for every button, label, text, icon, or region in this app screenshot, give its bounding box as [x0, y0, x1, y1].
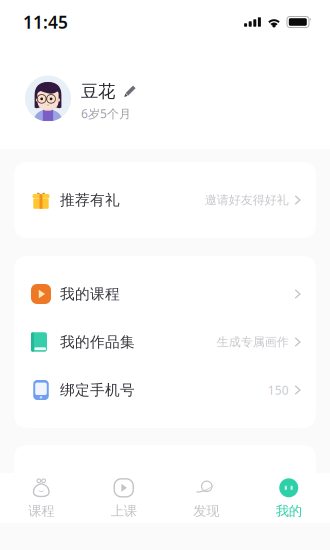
staticText: 生成专属画作	[217, 335, 289, 349]
staticText: 上课	[111, 503, 137, 519]
button[interactable]: 我的	[247, 473, 330, 523]
button[interactable]: 推荐有礼	[14, 176, 316, 224]
staticText: 豆花	[81, 81, 115, 102]
staticText: 我的课程	[60, 285, 120, 303]
staticText: 推荐有礼	[60, 191, 120, 209]
staticText: 我的订单	[60, 474, 120, 492]
button[interactable]: 绑定手机号	[14, 366, 316, 414]
button[interactable]: 上课	[82, 473, 165, 523]
staticText: 我的	[276, 503, 302, 519]
button[interactable]: 发现	[165, 473, 247, 523]
button[interactable]: 豆花	[0, 44, 330, 132]
staticText: 发现	[193, 503, 219, 519]
button[interactable]: 我的作品集	[14, 318, 316, 366]
button[interactable]: 我的订单	[14, 459, 316, 507]
button[interactable]: 课程	[0, 473, 82, 523]
staticText: 11:45	[23, 10, 68, 33]
staticText: 邀请好友得好礼	[205, 193, 289, 207]
staticText: 150	[268, 382, 289, 398]
staticText: 绑定手机号	[60, 381, 135, 399]
staticText: 课程	[28, 503, 54, 519]
staticText: 6岁5个月	[81, 105, 131, 121]
button[interactable]: 我的课程	[14, 270, 316, 318]
staticText: 我的作品集	[60, 333, 135, 351]
